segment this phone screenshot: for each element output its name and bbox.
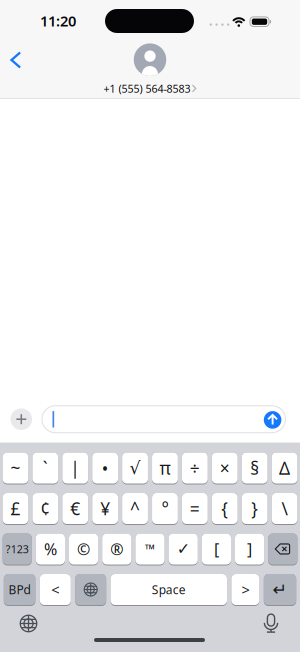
button[interactable]: [	[202, 533, 231, 565]
staticText: π	[159, 456, 170, 479]
staticText: ®	[110, 538, 123, 560]
staticText: ~	[10, 456, 20, 479]
staticText: |	[70, 456, 80, 479]
button[interactable]: ®	[102, 533, 131, 565]
button[interactable]: •	[92, 452, 118, 484]
button[interactable]: ?123	[3, 533, 32, 565]
button[interactable]: =	[182, 493, 208, 525]
button[interactable]: +1 (555) 564-8583	[103, 43, 196, 96]
staticText: ↵	[272, 580, 287, 599]
staticText: Δ	[279, 456, 290, 479]
staticText: <	[51, 580, 59, 599]
staticText: `	[43, 456, 48, 479]
staticText: BPd	[9, 581, 31, 597]
button[interactable]: §	[242, 452, 267, 484]
staticText: ^	[130, 497, 140, 520]
button[interactable]: £	[2, 493, 28, 525]
button[interactable]: ™	[135, 533, 165, 565]
button[interactable]: ]	[235, 533, 264, 565]
button[interactable]: <	[40, 574, 71, 606]
button[interactable]: Next keyboard	[14, 609, 43, 638]
staticText: =	[190, 497, 200, 520]
button[interactable]: Return	[264, 574, 296, 606]
staticText: +1 (555) 564-8583	[103, 81, 190, 96]
staticText: ?123	[6, 542, 29, 556]
button[interactable]: Δ	[272, 452, 297, 484]
staticText: [	[214, 538, 219, 560]
staticText: •	[102, 456, 109, 479]
staticText: ¢	[40, 497, 50, 520]
staticText: ÷	[190, 456, 200, 479]
staticText: £	[10, 497, 20, 520]
button[interactable]: €	[62, 493, 88, 525]
staticText: √	[129, 458, 140, 478]
button[interactable]: >	[231, 574, 259, 606]
staticText: }	[251, 497, 258, 520]
button[interactable]: }	[242, 493, 267, 525]
staticText: %	[44, 538, 57, 560]
button[interactable]: BPd	[4, 574, 35, 606]
staticText: ✓	[177, 540, 190, 558]
staticText: °	[161, 497, 168, 520]
button[interactable]: `	[32, 452, 58, 484]
staticText: €	[70, 497, 80, 520]
button[interactable]: ÷	[182, 452, 208, 484]
staticText: {	[221, 497, 228, 520]
button[interactable]: Space	[111, 574, 227, 606]
staticText: ]	[247, 538, 252, 560]
button[interactable]: Send	[264, 411, 281, 429]
staticText: ™	[145, 540, 155, 558]
staticText: ×	[220, 456, 230, 479]
button[interactable]: °	[152, 493, 178, 525]
button[interactable]: |	[62, 452, 88, 484]
staticText: >	[241, 580, 249, 599]
button[interactable]: %	[36, 533, 65, 565]
staticText: \	[281, 497, 287, 520]
button[interactable]: Message	[42, 406, 285, 433]
button[interactable]: ^	[122, 493, 148, 525]
button[interactable]: ~	[2, 452, 28, 484]
button[interactable]: Next keyboard	[75, 574, 106, 606]
button[interactable]: \	[272, 493, 297, 525]
staticText: 11:20	[40, 11, 76, 31]
button[interactable]: {	[212, 493, 238, 525]
button[interactable]: π	[152, 452, 178, 484]
button[interactable]: ✓	[169, 533, 198, 565]
button[interactable]: √	[122, 452, 148, 484]
staticText: §	[250, 456, 259, 479]
staticText: Space	[152, 581, 186, 597]
button[interactable]: ©	[69, 533, 98, 565]
button[interactable]: ×	[212, 452, 238, 484]
staticText: ¥	[100, 497, 110, 520]
button[interactable]: Apps	[10, 408, 32, 430]
button[interactable]: Back	[5, 46, 26, 73]
staticText: ©	[77, 538, 90, 560]
button[interactable]: Delete	[268, 533, 297, 565]
button[interactable]: Dictation	[257, 607, 284, 638]
button[interactable]: ¢	[32, 493, 58, 525]
button[interactable]: ¥	[92, 493, 118, 525]
